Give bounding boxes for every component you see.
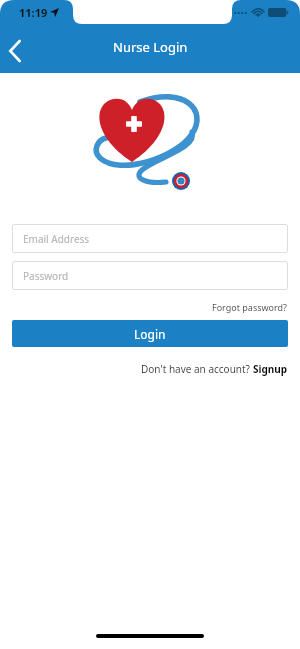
staticText: Nurse Login <box>113 38 188 56</box>
button[interactable]: Password <box>12 261 288 290</box>
staticText: Login <box>134 326 166 342</box>
button[interactable]: Email Address <box>12 224 288 253</box>
button[interactable]: Back <box>0 29 37 73</box>
staticText: Email Address <box>23 232 90 246</box>
staticText: Signup <box>253 362 288 376</box>
staticText: 11:19 <box>19 5 48 20</box>
button[interactable]: Forgot password? <box>212 301 288 313</box>
button[interactable]: Don't have an account? <box>141 362 288 376</box>
staticText: Password <box>23 269 69 283</box>
button[interactable]: Login <box>12 320 288 347</box>
staticText: Don't have an account? <box>141 362 253 376</box>
